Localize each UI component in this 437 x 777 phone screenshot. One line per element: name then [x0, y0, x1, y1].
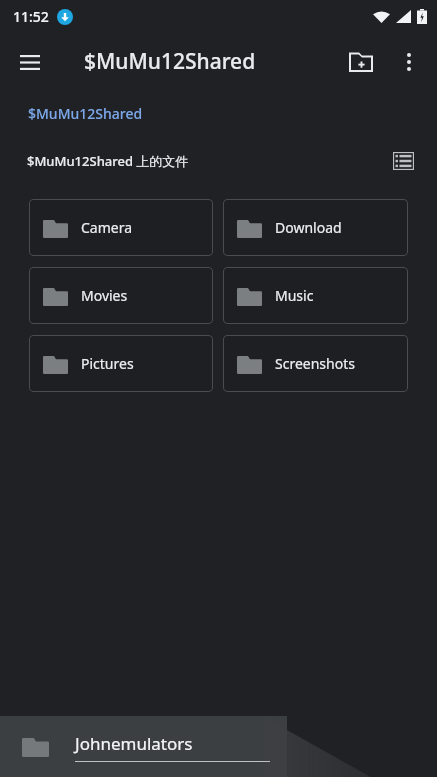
staticText: Download — [275, 218, 342, 237]
staticText: Screenshots — [275, 354, 355, 373]
staticText: Music — [275, 286, 314, 305]
button[interactable]: Switch to list view — [383, 141, 423, 181]
button[interactable]: More options — [385, 38, 433, 86]
staticText: $MuMu12Shared — [28, 104, 143, 123]
button[interactable]: Movies — [29, 267, 213, 324]
button[interactable]: Screenshots — [223, 335, 408, 392]
button[interactable]: Music — [223, 267, 408, 324]
button[interactable]: $MuMu12Shared — [20, 100, 151, 127]
button[interactable]: New folder — [337, 38, 385, 86]
staticText: $MuMu12Shared 上的文件 — [27, 152, 189, 170]
staticText: Johnemulators — [75, 732, 193, 755]
button[interactable]: Pictures — [29, 335, 213, 392]
staticText: 11:52 — [13, 7, 49, 26]
staticText: $MuMu12Shared — [84, 47, 337, 76]
staticText: Camera — [81, 218, 133, 237]
staticText: Pictures — [81, 354, 134, 373]
button[interactable]: Camera — [29, 199, 213, 256]
button[interactable]: Navigation menu — [6, 38, 54, 86]
button[interactable]: Download — [223, 199, 408, 256]
button[interactable] — [0, 716, 287, 777]
staticText: Movies — [81, 286, 128, 305]
